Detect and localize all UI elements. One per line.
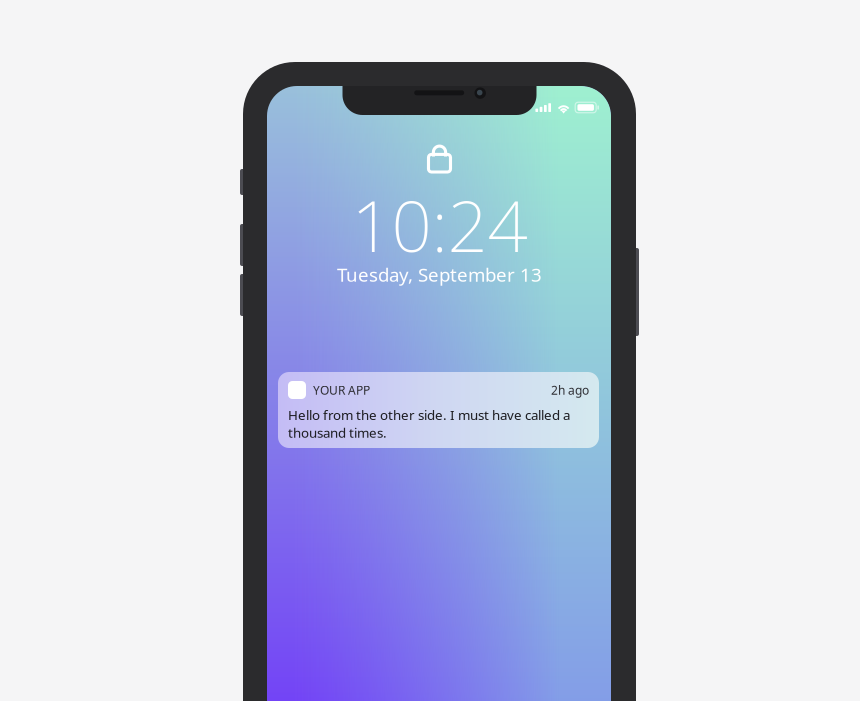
staticText: Hello from the other side. I must have c… bbox=[288, 406, 570, 441]
staticText: Tuesday, September 13 bbox=[337, 262, 542, 287]
staticText: 2h ago bbox=[551, 382, 589, 398]
staticText: YOUR APP bbox=[313, 382, 370, 398]
staticText: 10:24 bbox=[351, 178, 527, 271]
button[interactable]: YOUR APP bbox=[278, 372, 599, 448]
